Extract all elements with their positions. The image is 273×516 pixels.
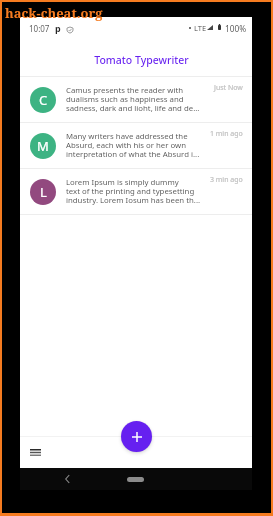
staticText: Camus presents the reader with dualisms … (66, 85, 200, 114)
staticText: M (37, 137, 49, 155)
button[interactable]: Add (121, 421, 152, 452)
button[interactable]: C (20, 77, 252, 122)
staticText: hack-cheat.org (5, 4, 103, 22)
button[interactable]: Menu (25, 442, 45, 462)
staticText: C (39, 91, 48, 109)
button[interactable]: M (20, 123, 252, 168)
staticText: p (55, 22, 61, 34)
staticText: Just Now (214, 83, 243, 93)
button[interactable]: L (20, 169, 252, 214)
staticText: Tomato Typewriter (94, 53, 189, 67)
staticText: Lorem Ipsum is simply dummy text of the … (66, 177, 201, 206)
button[interactable]: Back (60, 472, 74, 486)
staticText: 10:07 (29, 23, 50, 34)
staticText: LTE (194, 23, 207, 33)
staticText: Many writers have addressed the Absurd, … (66, 131, 200, 160)
staticText: 100% (225, 23, 247, 34)
button[interactable]: Home (127, 477, 144, 482)
staticText: 3 min ago (210, 175, 243, 185)
staticText: L (40, 183, 47, 201)
staticText: 1 min ago (210, 129, 243, 139)
